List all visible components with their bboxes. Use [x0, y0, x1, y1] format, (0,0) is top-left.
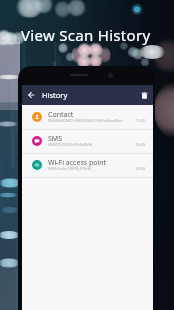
button[interactable]: Wi-Fi access point	[22, 153, 153, 177]
staticText: SMSTO:23055:FfeNrNrN	[48, 142, 92, 147]
staticText: Contact	[48, 110, 74, 120]
staticText: BEGIN:VCARD VERSION:3.0 N:FwEwwNxx	[48, 118, 123, 123]
staticText: 14:08	[135, 166, 145, 171]
button[interactable]: SMS	[22, 129, 153, 153]
staticText: History	[42, 90, 68, 100]
button[interactable]: Contact	[22, 105, 153, 129]
staticText: WIFI:S:efx;T:WPA;P:NrN;	[48, 166, 92, 171]
staticText: View Scan History	[21, 25, 151, 45]
button[interactable]: Delete	[136, 85, 153, 105]
staticText: Wi-Fi access point	[48, 158, 107, 168]
button[interactable]: Back	[22, 85, 39, 105]
staticText: SMS	[48, 134, 63, 144]
staticText: 16:29	[135, 142, 145, 147]
staticText: 11:32	[135, 118, 145, 123]
